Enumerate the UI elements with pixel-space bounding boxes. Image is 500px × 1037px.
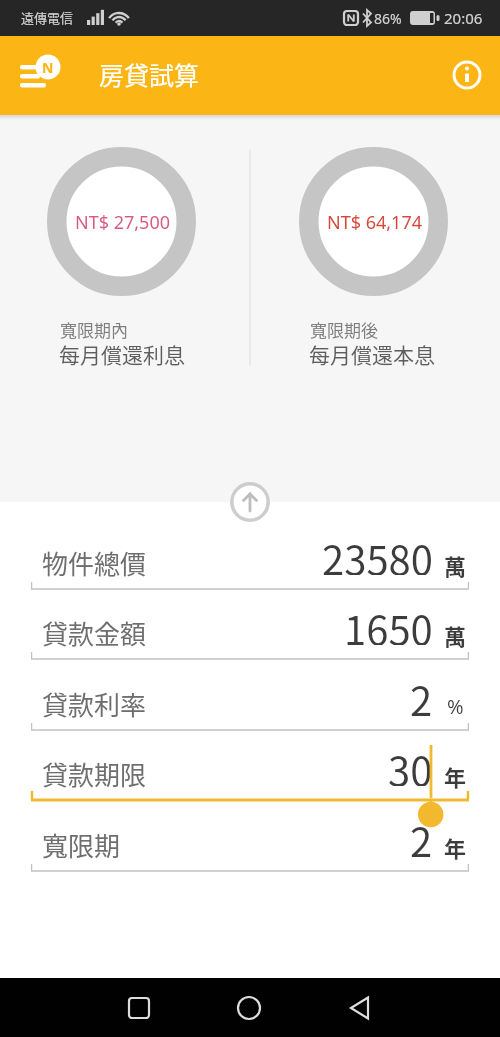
staticText: 房貸試算 bbox=[99, 56, 200, 92]
staticText: 貸款期限 bbox=[42, 755, 147, 793]
staticText: 物件總價 bbox=[42, 544, 147, 582]
staticText: 貸款利率 bbox=[42, 685, 147, 723]
staticText: 2 bbox=[410, 670, 433, 716]
staticText: 每月償還本息 bbox=[309, 339, 435, 369]
button[interactable] bbox=[330, 978, 390, 1037]
button[interactable] bbox=[219, 978, 279, 1037]
staticText: 2 bbox=[410, 811, 433, 857]
staticText: 寬限期 bbox=[42, 826, 121, 864]
staticText: 86% bbox=[374, 9, 402, 28]
button[interactable]: 貸款金額 bbox=[31, 597, 469, 659]
button[interactable]: 物件總價 bbox=[31, 527, 469, 589]
staticText: 貸款金額 bbox=[42, 614, 147, 652]
button[interactable] bbox=[228, 480, 272, 524]
staticText: 萬 bbox=[444, 619, 467, 651]
staticText: NT$ 64,174 bbox=[327, 210, 422, 235]
staticText: 1650 bbox=[344, 599, 433, 645]
button[interactable] bbox=[443, 51, 491, 99]
button[interactable]: 貸款利率 bbox=[31, 668, 469, 730]
staticText: 萬 bbox=[444, 549, 467, 581]
staticText: % bbox=[447, 693, 464, 720]
staticText: 遠傳電信 bbox=[21, 8, 74, 27]
staticText: 每月償還利息 bbox=[59, 339, 185, 369]
button[interactable] bbox=[109, 978, 169, 1037]
staticText: 年 bbox=[444, 760, 467, 792]
staticText: 20:06 bbox=[444, 8, 483, 28]
button[interactable]: N bbox=[10, 52, 66, 100]
button[interactable]: 寬限期 bbox=[31, 809, 469, 871]
button[interactable]: 貸款期限 bbox=[31, 738, 469, 800]
staticText: 年 bbox=[444, 831, 467, 863]
staticText: 30 bbox=[388, 740, 433, 786]
staticText: 寬限期後 bbox=[310, 317, 378, 342]
staticText: 23580 bbox=[322, 529, 433, 575]
staticText: 寬限期內 bbox=[60, 317, 128, 342]
staticText: NT$ 27,500 bbox=[75, 210, 170, 235]
staticText: N bbox=[42, 58, 54, 77]
